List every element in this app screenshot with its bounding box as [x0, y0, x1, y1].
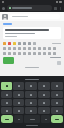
- button[interactable]: Key: [13, 107, 24, 114]
- button[interactable]: Enter: [51, 115, 63, 123]
- button[interactable]: Emoji: [8, 47, 11, 50]
- button[interactable]: [10, 14, 60, 19]
- button[interactable]: Key: [25, 91, 37, 98]
- button[interactable]: Key: [13, 82, 24, 90]
- button[interactable]: Emoji: [48, 47, 51, 50]
- button[interactable]: Key: [25, 82, 37, 90]
- button[interactable]: Emoji: [33, 47, 36, 50]
- button[interactable]: Options: [57, 61, 61, 65]
- button[interactable]: Emoji: [33, 52, 36, 55]
- button[interactable]: Emoji: [43, 47, 46, 50]
- button[interactable]: Emoji: [23, 42, 26, 45]
- button[interactable]: Key: [25, 99, 37, 106]
- button[interactable]: Key: [25, 107, 37, 114]
- button[interactable]: Emoji: [38, 52, 41, 55]
- button[interactable]: Key: [51, 82, 63, 90]
- button[interactable]: Key: [13, 99, 24, 106]
- button[interactable]: Emoji: [23, 52, 26, 55]
- button[interactable]: Symbols: [1, 115, 13, 123]
- button[interactable]: Emoji: [13, 42, 16, 45]
- button[interactable]: Emoji: [18, 47, 21, 50]
- button[interactable]: Period: [41, 115, 50, 123]
- button[interactable]: Tabs: [2, 7, 5, 10]
- button[interactable]: Key: [38, 107, 50, 114]
- button[interactable]: Emoji: [53, 47, 56, 50]
- button[interactable]: Profile: [2, 14, 8, 20]
- button[interactable]: Emoji: [13, 47, 16, 50]
- button[interactable]: Emoji: [18, 52, 21, 55]
- button[interactable]: [7, 5, 52, 11]
- button[interactable]: Emoji: [13, 52, 16, 55]
- button[interactable]: Emoji: [43, 52, 46, 55]
- button[interactable]: Key: [1, 82, 12, 90]
- button[interactable]: More options: [59, 7, 62, 10]
- button[interactable]: Emoji: [28, 42, 31, 45]
- button[interactable]: Key: [1, 107, 12, 114]
- button[interactable]: Emoji: [18, 42, 21, 45]
- button[interactable]: Space: [24, 115, 40, 123]
- button[interactable]: Key: [38, 82, 50, 90]
- button[interactable]: Emoji: [3, 42, 6, 45]
- button[interactable]: Emoji: [3, 52, 6, 55]
- button[interactable]: Emoji: [28, 47, 31, 50]
- button[interactable]: Emoji: [53, 52, 56, 55]
- button[interactable]: Emoji: [8, 52, 11, 55]
- button[interactable]: Send: [3, 57, 14, 64]
- button[interactable]: Key: [38, 91, 50, 98]
- button[interactable]: Key: [1, 91, 12, 98]
- button[interactable]: Comma: [14, 115, 23, 123]
- button[interactable]: Key: [51, 107, 63, 114]
- button[interactable]: Emoji: [48, 52, 51, 55]
- button[interactable]: Key: [13, 91, 24, 98]
- button[interactable]: Key: [38, 99, 50, 106]
- button[interactable]: Emoji: [28, 52, 31, 55]
- button[interactable]: Emoji: [33, 42, 36, 45]
- button[interactable]: Emoji: [3, 47, 6, 50]
- button[interactable]: Key: [51, 99, 63, 106]
- button[interactable]: Emoji: [38, 47, 41, 50]
- button[interactable]: [3, 27, 61, 39]
- button[interactable]: Key: [51, 91, 63, 98]
- button[interactable]: Emoji: [23, 47, 26, 50]
- button[interactable]: Emoji: [8, 42, 11, 45]
- button[interactable]: Key: [1, 99, 12, 106]
